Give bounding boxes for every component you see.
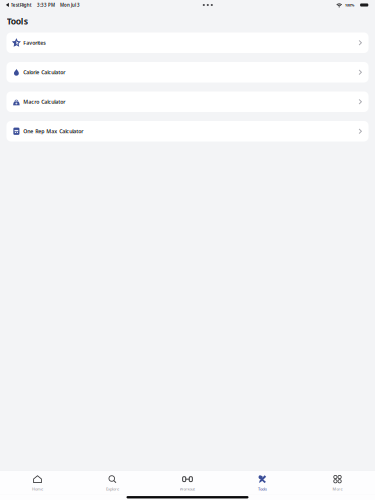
button[interactable]: Explore: [75, 470, 150, 494]
button[interactable]: Macro Calculator: [6, 91, 368, 112]
staticText: Workout: [179, 486, 195, 492]
staticText: Calorie Calculator: [23, 69, 65, 76]
staticText: Tools: [258, 486, 267, 492]
staticText: Mon Jul 3: [60, 2, 80, 8]
staticText: Home: [32, 486, 43, 492]
button[interactable]: More: [300, 470, 375, 494]
button[interactable]: One Rep Max Calculator: [6, 121, 368, 141]
staticText: Explore: [106, 486, 119, 492]
staticText: One Rep Max Calculator: [23, 128, 83, 135]
staticText: Tools: [7, 15, 28, 27]
staticText: 100%: [345, 2, 355, 8]
staticText: TestFlight: [11, 2, 32, 8]
button[interactable]: Tools: [225, 470, 300, 494]
staticText: 3:33 PM: [37, 2, 55, 8]
button[interactable]: Workout: [150, 470, 225, 494]
staticText: More: [332, 486, 342, 492]
button[interactable]: Calorie Calculator: [6, 62, 368, 82]
staticText: Favorites: [23, 39, 46, 46]
button[interactable]: Favorites: [6, 32, 368, 53]
staticText: Macro Calculator: [23, 98, 65, 105]
button[interactable]: Home: [0, 470, 75, 494]
